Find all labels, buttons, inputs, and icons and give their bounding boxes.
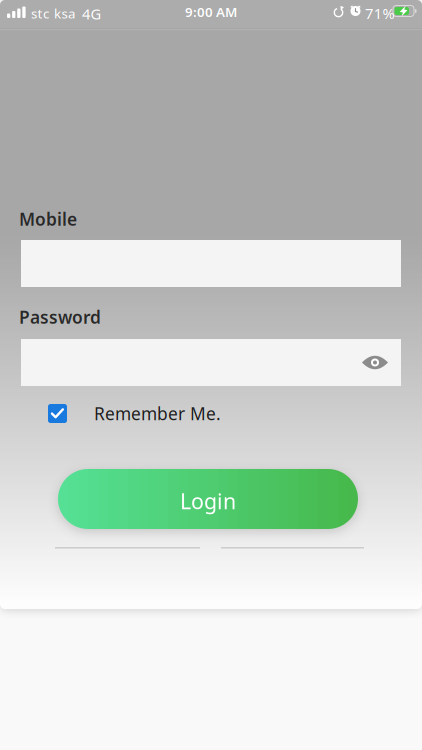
- staticText: Remember Me.: [94, 402, 221, 425]
- staticText: Login: [180, 487, 236, 515]
- button[interactable]: Password: [21, 339, 401, 386]
- staticText: 4G: [82, 4, 102, 23]
- button[interactable]: Remember Me.: [48, 402, 221, 425]
- button[interactable]: Login: [58, 469, 358, 529]
- staticText: ksa: [54, 4, 75, 22]
- staticText: stc: [31, 4, 49, 22]
- staticText: 9:00 AM: [185, 3, 237, 21]
- staticText: 71%: [365, 3, 395, 23]
- staticText: Password: [19, 305, 101, 328]
- staticText: Mobile: [19, 207, 77, 230]
